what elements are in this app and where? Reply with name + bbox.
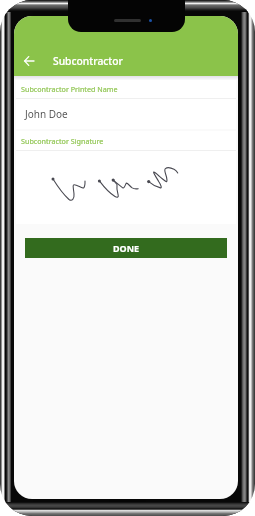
staticText: Subcontractor Printed Name	[21, 84, 118, 94]
staticText: DONE	[113, 242, 140, 254]
staticText: John Doe	[25, 107, 68, 121]
button[interactable]: DONE	[25, 238, 227, 258]
staticText: Subcontractor	[53, 54, 123, 68]
staticText: Subcontractor Signature	[21, 136, 104, 146]
button[interactable]: Back	[19, 51, 39, 71]
